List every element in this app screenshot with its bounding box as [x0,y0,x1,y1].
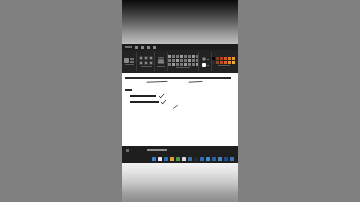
button[interactable]: Taskbar app [230,157,234,161]
button[interactable]: Taskbar app [152,157,156,161]
button[interactable]: Tool [144,61,148,65]
button[interactable]: Taskbar app [164,157,168,161]
button[interactable]: Ribbon group [137,50,154,73]
button[interactable]: Tool [139,56,143,60]
button[interactable]: Taskbar app [182,157,186,161]
button[interactable]: Ribbon group [168,50,198,73]
button[interactable]: Taskbar app [206,157,210,161]
button[interactable]: Taskbar app [176,157,180,161]
button[interactable]: Taskbar app [218,157,222,161]
button[interactable]: Ribbon group [212,50,236,73]
button[interactable]: Ribbon group [122,50,136,73]
button[interactable]: List item [125,100,233,104]
button[interactable]: Taskbar app [158,157,162,161]
button[interactable]: Tool [144,56,148,60]
button[interactable]: Taskbar app [170,157,174,161]
button[interactable]: Tool [149,56,153,60]
button[interactable]: Ribbon group [155,50,167,73]
button[interactable]: Taskbar app [200,157,204,161]
button[interactable]: Ribbon group [199,50,211,73]
button[interactable]: Taskbar app [224,157,228,161]
button[interactable]: Tool [149,61,153,65]
button[interactable]: Video player [122,0,238,202]
button[interactable]: Tool [139,61,143,65]
button[interactable]: Taskbar app [212,157,216,161]
button[interactable]: List item [125,94,233,98]
button[interactable]: Document canvas [122,73,238,146]
button[interactable]: Taskbar app [188,157,192,161]
